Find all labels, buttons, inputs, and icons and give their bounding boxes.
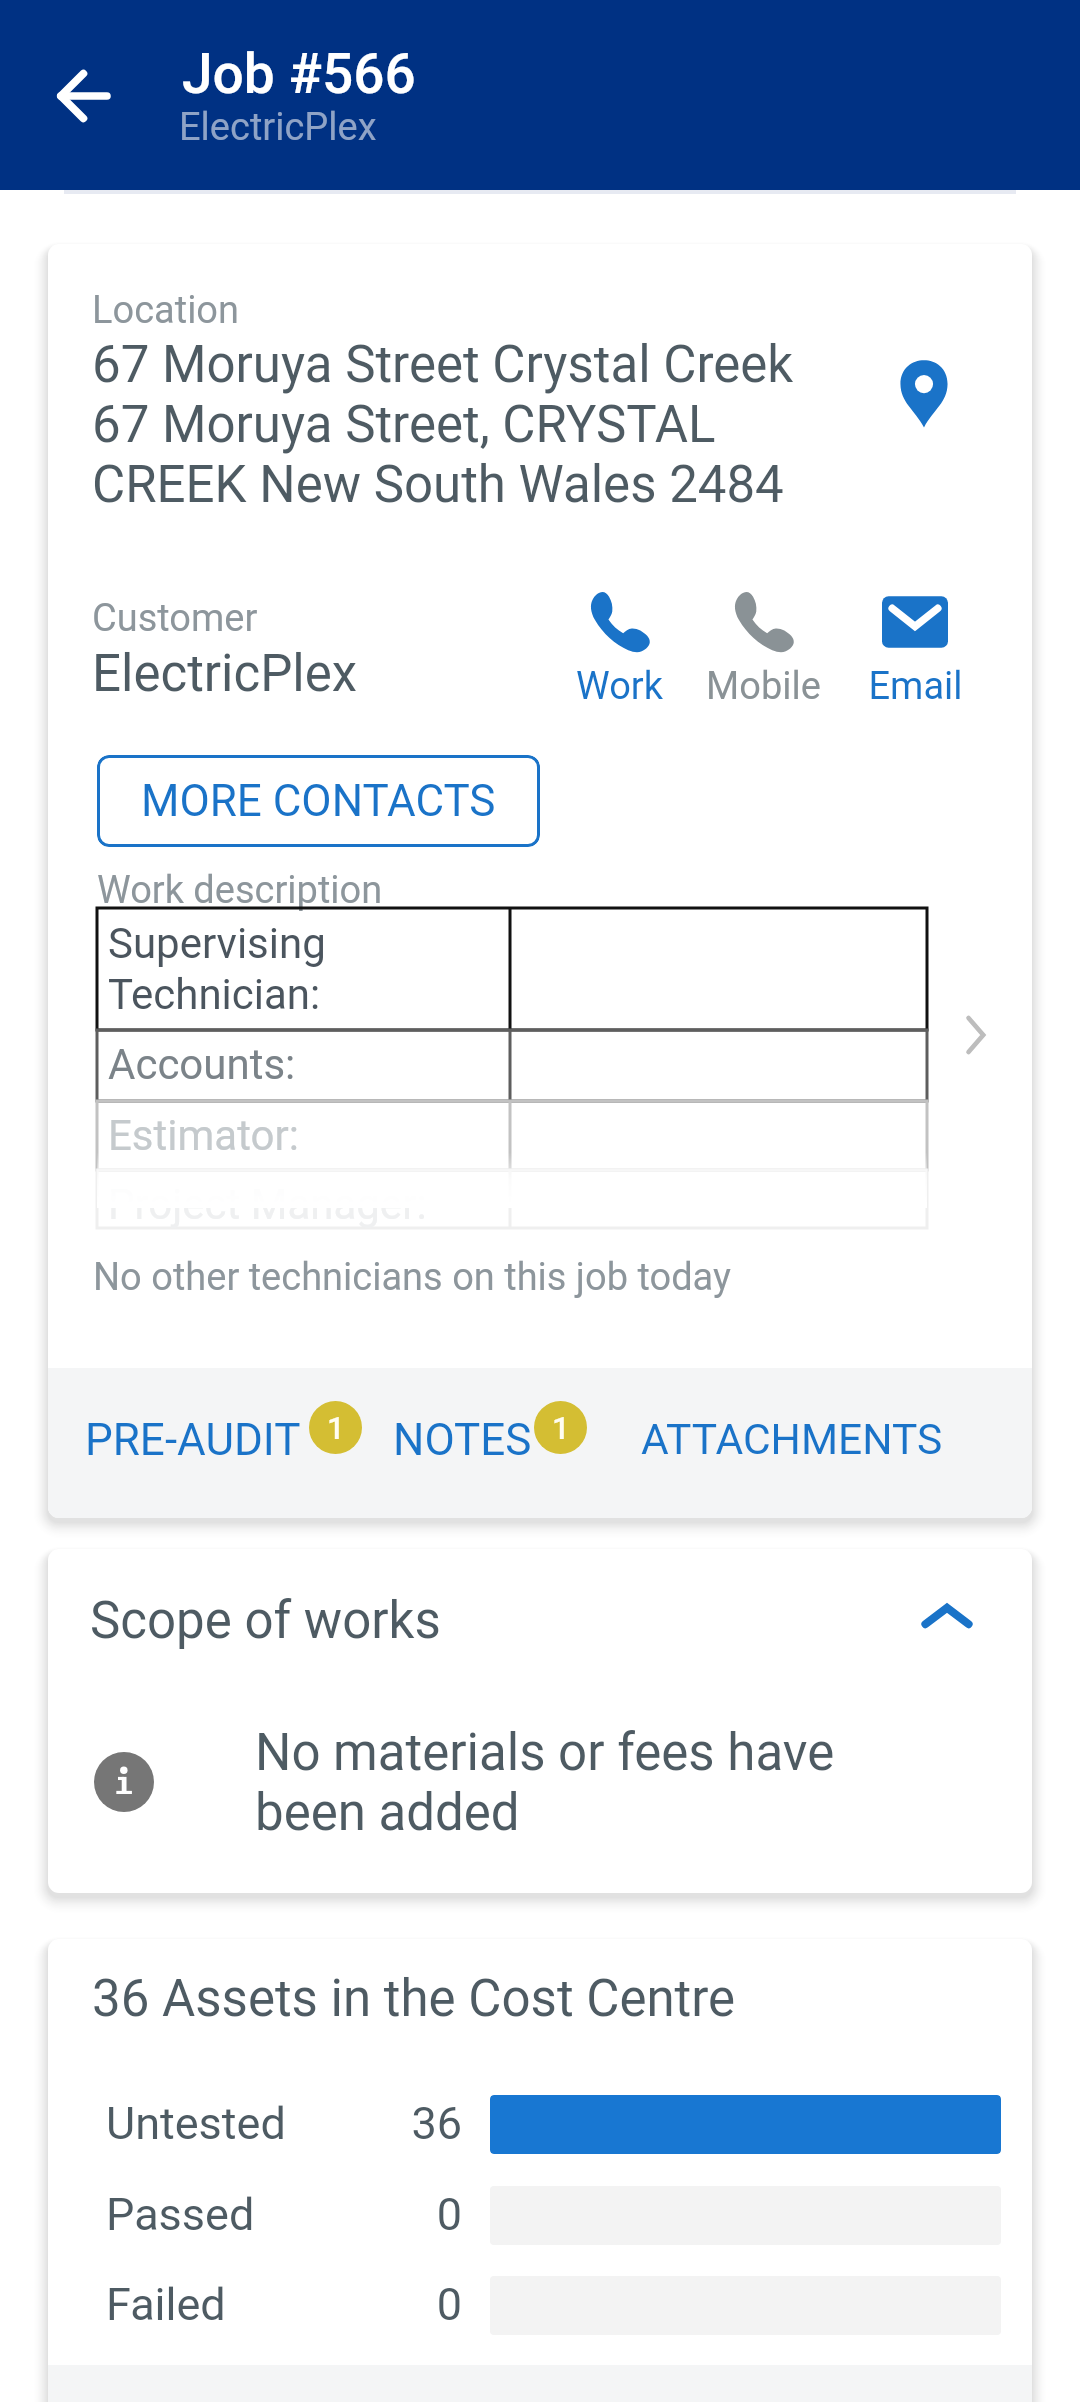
staticText: MORE CONTACTS [141,775,496,827]
button[interactable]: Back [29,41,139,151]
staticText: Scope of works [90,1591,441,1651]
staticText: Job #566 [182,42,416,106]
staticText: Project Manager: [108,1180,427,1229]
staticText: 36 Assets in the Cost Centre [92,1969,736,2029]
staticText: No materials or fees have [255,1723,835,1783]
staticText: ATTACHMENTS [641,1415,943,1465]
button[interactable]: Expand work description [946,1005,1006,1065]
staticText: 1 [327,1410,345,1446]
staticText: ElectricPlex [179,105,377,150]
staticText: CREEK New South Wales 2484 [92,455,784,515]
staticText: Estimator: [108,1111,299,1160]
staticText: 0 [331,2188,462,2241]
button[interactable]: NOTES [383,1388,587,1498]
button[interactable]: Email [850,578,980,708]
button[interactable]: PRE-AUDIT [75,1388,362,1498]
staticText: 1 [552,1410,570,1446]
staticText: PRE-AUDIT [85,1414,301,1466]
button[interactable]: ATTACHMENTS [631,1400,947,1480]
staticText: Supervising [108,919,326,968]
staticText: NOTES [393,1414,532,1466]
staticText: Untested [106,2097,286,2150]
staticText: 67 Moruya Street Crystal Creek [92,335,794,395]
staticText: Location [92,288,240,333]
staticText: Failed [106,2278,226,2331]
staticText: Customer [92,596,258,641]
staticText: 36 [331,2097,462,2150]
staticText: Technician: [108,970,321,1019]
staticText: been added [255,1783,520,1843]
staticText: Work [576,664,663,709]
button[interactable]: MORE CONTACTS [97,755,540,847]
button[interactable]: Open location in map [864,334,984,454]
button[interactable]: Work [554,578,684,708]
staticText: Accounts: [108,1040,296,1089]
staticText: 0 [331,2278,462,2331]
staticText: Passed [106,2188,255,2241]
staticText: Email [868,664,963,709]
staticText: 67 Moruya Street, CRYSTAL [92,395,716,455]
staticText: No other technicians on this job today [93,1255,731,1300]
button[interactable]: Mobile [698,578,828,708]
staticText: Mobile [706,664,821,709]
button[interactable]: Collapse scope of works [902,1571,992,1661]
staticText: Work description [97,868,383,913]
staticText: ElectricPlex [92,644,358,704]
